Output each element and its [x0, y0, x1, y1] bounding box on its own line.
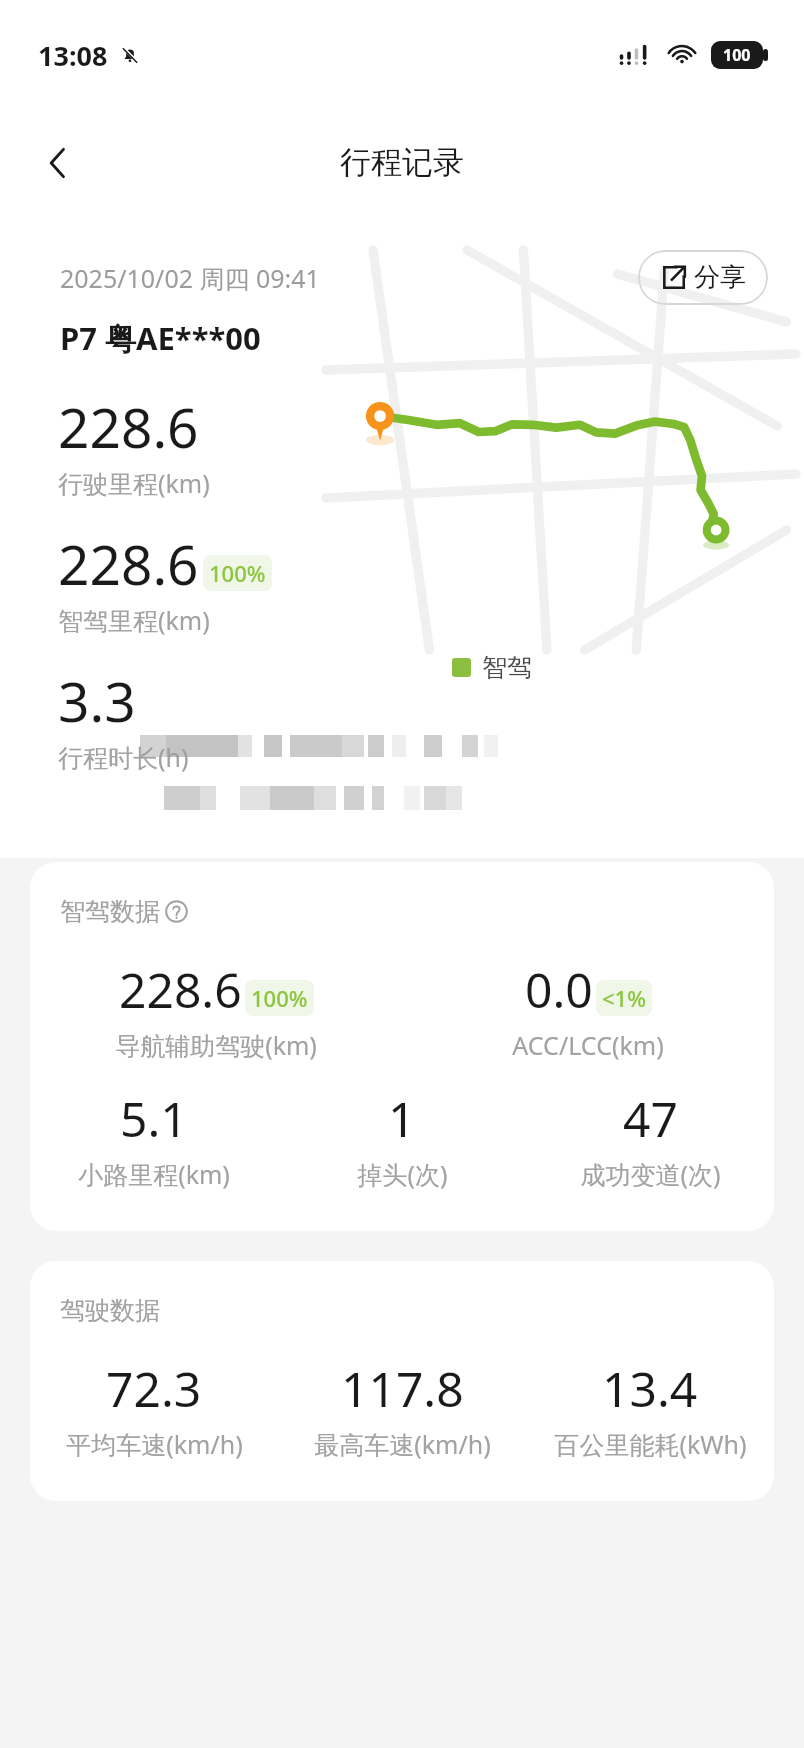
staticText: 智驾数据 [60, 896, 160, 927]
staticText: 72.3 [106, 1356, 202, 1421]
staticText: 掉头(次) [357, 1157, 448, 1191]
staticText: 100% [209, 558, 266, 588]
staticText: 小路里程(km) [78, 1157, 230, 1191]
staticText: 228.6 [58, 526, 199, 601]
staticText: 驾驶数据 [60, 1295, 160, 1326]
staticText: 智驾里程(km) [58, 603, 210, 637]
staticText: 行程时长(h) [58, 740, 189, 774]
staticText: 平均车速(km/h) [66, 1427, 243, 1461]
staticText: 5.1 [120, 1086, 188, 1151]
staticText: 1 [388, 1086, 416, 1151]
staticText: 117.8 [341, 1356, 464, 1421]
staticText: 13:08 [38, 37, 108, 74]
staticText: 100 [723, 44, 751, 66]
staticText: P7 粤AE***00 [60, 317, 261, 359]
staticText: 100% [251, 983, 308, 1013]
staticText: 导航辅助驾驶(km) [115, 1028, 317, 1062]
staticText: 2025/10/02 周四 09:41 [60, 261, 320, 295]
staticText: 0.0 [525, 957, 593, 1022]
staticText: 228.6 [58, 389, 199, 464]
button[interactable]: Back [26, 131, 90, 195]
button[interactable]: 分享 [638, 250, 768, 305]
staticText: ACC/LCC(km) [512, 1028, 664, 1062]
staticText: 成功变道(次) [580, 1157, 721, 1191]
staticText: 47 [623, 1086, 678, 1151]
staticText: 最高车速(km/h) [314, 1427, 491, 1461]
staticText: 228.6 [119, 957, 242, 1022]
staticText: 行驶里程(km) [58, 466, 210, 500]
staticText: 3.3 [58, 663, 136, 738]
staticText: 百公里能耗(kWh) [554, 1427, 747, 1461]
staticText: 行程记录 [340, 143, 464, 182]
staticText: 分享 [694, 261, 746, 294]
staticText: 13.4 [602, 1356, 698, 1421]
staticText: <1% [602, 983, 646, 1013]
staticText: 智驾 [482, 652, 532, 683]
